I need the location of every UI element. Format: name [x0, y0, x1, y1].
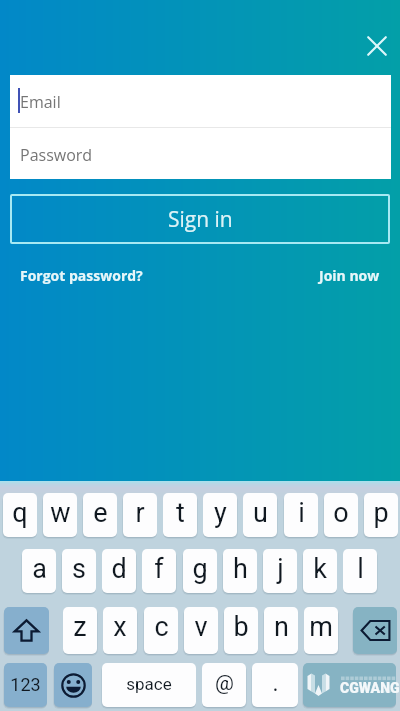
- button[interactable]: Backspace: [353, 607, 397, 654]
- staticText: Email: [20, 91, 61, 113]
- staticText: f: [154, 553, 164, 585]
- staticText: s: [72, 553, 86, 585]
- button[interactable]: space: [102, 663, 196, 707]
- button[interactable]: a: [22, 549, 56, 593]
- button[interactable]: k: [303, 549, 337, 593]
- button[interactable]: g: [183, 549, 217, 593]
- staticText: t: [176, 497, 185, 529]
- button[interactable]: z: [63, 607, 97, 654]
- button[interactable]: l: [343, 549, 377, 593]
- button[interactable]: x: [103, 607, 137, 654]
- button[interactable]: Password: [10, 128, 391, 179]
- button[interactable]: Email: [10, 75, 391, 127]
- staticText: @: [215, 671, 234, 696]
- button[interactable]: c: [144, 607, 178, 654]
- staticText: .: [272, 670, 279, 697]
- button[interactable]: f: [142, 549, 176, 593]
- staticText: m: [309, 611, 333, 643]
- staticText: p: [373, 497, 389, 529]
- staticText: g: [192, 553, 208, 585]
- staticText: e: [93, 497, 108, 529]
- staticText: c: [154, 611, 169, 643]
- button[interactable]: w: [43, 493, 77, 537]
- button[interactable]: t: [163, 493, 197, 537]
- staticText: Join now: [319, 266, 380, 285]
- staticText: Forgot password?: [20, 266, 143, 285]
- staticText: j: [277, 553, 284, 585]
- staticText: b: [233, 611, 249, 643]
- button[interactable]: p: [364, 493, 398, 537]
- staticText: x: [113, 611, 127, 643]
- button[interactable]: u: [243, 493, 277, 537]
- staticText: n: [274, 611, 289, 643]
- button[interactable]: b: [224, 607, 258, 654]
- staticText: l: [357, 553, 364, 585]
- button[interactable]: @: [202, 663, 246, 707]
- staticText: u: [253, 497, 268, 529]
- staticText: v: [194, 611, 208, 643]
- staticText: 123: [10, 674, 41, 695]
- staticText: k: [313, 553, 327, 585]
- button[interactable]: q: [3, 493, 37, 537]
- staticText: r: [135, 497, 145, 529]
- staticText: h: [233, 553, 248, 585]
- staticText: Sign in: [168, 205, 233, 234]
- staticText: o: [333, 497, 349, 529]
- button[interactable]: Shift: [4, 607, 49, 654]
- button[interactable]: Enter: [303, 663, 396, 707]
- staticText: i: [298, 497, 305, 529]
- staticText: a: [32, 553, 47, 585]
- button[interactable]: h: [223, 549, 257, 593]
- button[interactable]: m: [304, 607, 338, 654]
- button[interactable]: j: [263, 549, 297, 593]
- button[interactable]: Sign in: [10, 194, 390, 244]
- button[interactable]: 123: [4, 663, 47, 707]
- staticText: q: [12, 497, 28, 529]
- staticText: space: [126, 674, 172, 694]
- button[interactable]: s: [62, 549, 96, 593]
- button[interactable]: i: [284, 493, 318, 537]
- staticText: d: [111, 553, 127, 585]
- button[interactable]: .: [252, 663, 298, 707]
- button[interactable]: n: [264, 607, 298, 654]
- button[interactable]: Join now: [313, 262, 374, 281]
- button[interactable]: Close: [360, 29, 393, 62]
- staticText: CGWANG: [340, 680, 400, 696]
- button[interactable]: y: [203, 493, 237, 537]
- button[interactable]: d: [102, 549, 136, 593]
- button[interactable]: v: [184, 607, 218, 654]
- button[interactable]: o: [324, 493, 358, 537]
- staticText: Password: [20, 144, 93, 166]
- staticText: w: [50, 497, 71, 529]
- button[interactable]: Emoji: [54, 663, 92, 707]
- staticText: y: [214, 497, 227, 529]
- staticText: z: [73, 611, 87, 643]
- button[interactable]: e: [83, 493, 117, 537]
- button[interactable]: Forgot password?: [14, 262, 137, 281]
- button[interactable]: r: [123, 493, 157, 537]
